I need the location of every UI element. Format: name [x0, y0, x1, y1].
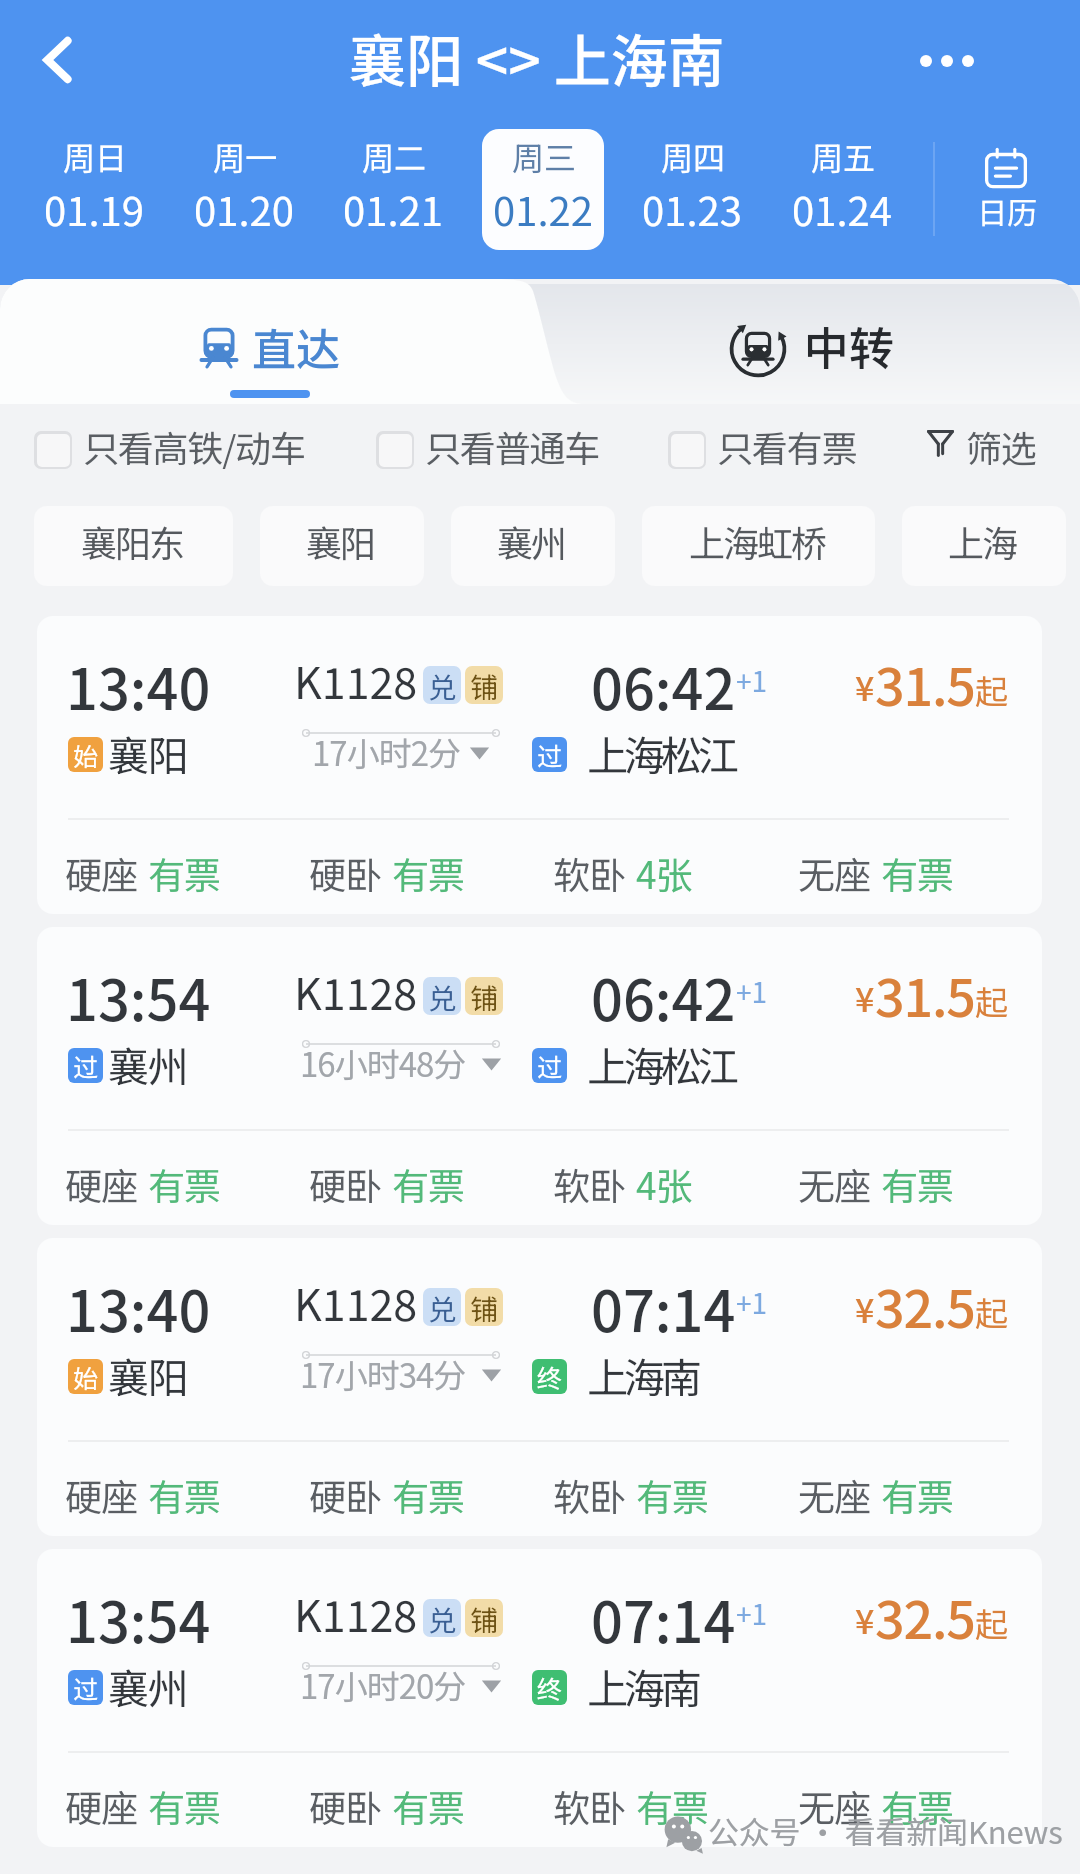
staticText: ¥	[855, 973, 875, 1022]
staticText: 起	[975, 1288, 1008, 1336]
staticText: 公众号 · 看看新闻Knews	[708, 1808, 1063, 1853]
staticText: 过	[73, 1048, 99, 1083]
staticText: 过	[537, 1048, 563, 1083]
staticText: 31.5	[875, 646, 975, 721]
staticText: 有票	[881, 1468, 953, 1522]
staticText: 襄州	[108, 1034, 187, 1093]
staticText: 只看有票	[717, 420, 857, 472]
staticText: 起	[975, 1599, 1008, 1647]
staticText: 06:42	[591, 645, 736, 726]
staticText: 兑	[428, 1288, 457, 1326]
staticText: ¥	[855, 1284, 875, 1333]
staticText: 01.20	[194, 180, 294, 238]
staticText: K1128	[294, 1271, 418, 1333]
staticText: 上海南	[587, 1656, 698, 1715]
staticText: K1128	[294, 1582, 418, 1644]
staticText: 中转	[804, 313, 895, 378]
button[interactable]	[631, 129, 753, 250]
staticText: 有票	[392, 846, 464, 900]
button[interactable]	[781, 129, 903, 250]
staticText: 上海松江	[587, 723, 735, 782]
staticText: ¥	[855, 1595, 875, 1644]
staticText: 16小时48分	[300, 1039, 466, 1087]
button[interactable]: More options	[906, 19, 990, 103]
staticText: 有票	[392, 1468, 464, 1522]
button[interactable]: 13:54	[37, 927, 1042, 1225]
staticText: ¥	[855, 662, 875, 711]
staticText: 直达	[252, 315, 340, 379]
button[interactable]	[260, 506, 424, 586]
staticText: 铺	[470, 666, 499, 704]
staticText: 有票	[392, 1157, 464, 1211]
button[interactable]: 13:54	[37, 1549, 1042, 1847]
staticText: 周日	[63, 133, 128, 179]
staticText: 起	[975, 666, 1008, 714]
staticText: 周三	[512, 133, 577, 179]
staticText: 兑	[428, 1599, 457, 1637]
staticText: 31.5	[875, 957, 975, 1032]
staticText: 周一	[213, 133, 278, 179]
button[interactable]	[33, 129, 155, 250]
staticText: 硬卧	[309, 1157, 381, 1211]
staticText: 软卧	[553, 846, 625, 900]
button[interactable]	[183, 129, 305, 250]
button[interactable]	[28, 420, 351, 478]
button[interactable]	[482, 129, 604, 250]
staticText: 01.21	[343, 180, 443, 238]
staticText: 01.22	[493, 180, 593, 238]
button[interactable]: Back	[18, 20, 98, 100]
staticText: 无座	[798, 846, 870, 900]
staticText: 兑	[428, 977, 457, 1015]
staticText: +1	[736, 660, 768, 701]
staticText: 13:40	[66, 1267, 211, 1348]
button[interactable]	[451, 506, 615, 586]
staticText: 周五	[811, 133, 876, 179]
staticText: 襄州	[108, 1656, 187, 1715]
button[interactable]	[0, 279, 540, 404]
button[interactable]	[642, 506, 875, 586]
staticText: 01.19	[44, 180, 144, 238]
button[interactable]	[902, 506, 1066, 586]
staticText: 始	[73, 1359, 99, 1394]
staticText: 襄阳 <> 上海南	[349, 16, 725, 99]
staticText: 有票	[392, 1779, 464, 1833]
staticText: 只看高铁/动车	[83, 420, 305, 472]
staticText: 17小时2分	[312, 728, 460, 776]
staticText: 17小时34分	[300, 1350, 466, 1398]
staticText: 有票	[881, 846, 953, 900]
button[interactable]	[370, 420, 621, 478]
staticText: 硬卧	[309, 1779, 381, 1833]
button[interactable]: Calendar	[944, 129, 1068, 250]
staticText: 有票	[148, 846, 220, 900]
staticText: 上海南	[587, 1345, 698, 1404]
staticText: 兑	[428, 666, 457, 704]
staticText: 07:14	[591, 1578, 736, 1659]
staticText: 过	[537, 737, 563, 772]
staticText: 硬座	[65, 846, 137, 900]
staticText: 01.23	[642, 180, 742, 238]
button[interactable]	[34, 506, 233, 586]
staticText: 日历	[977, 189, 1037, 232]
staticText: 有票	[148, 1157, 220, 1211]
staticText: 硬卧	[309, 1468, 381, 1522]
staticText: 襄阳	[306, 515, 375, 567]
button[interactable]	[332, 129, 454, 250]
staticText: 铺	[470, 1288, 499, 1326]
staticText: 01.24	[792, 180, 892, 238]
button[interactable]	[920, 420, 1045, 478]
staticText: 襄阳	[108, 1345, 187, 1404]
staticText: 只看普通车	[425, 420, 600, 472]
button[interactable]: 13:40	[37, 1238, 1042, 1536]
staticText: 硬座	[65, 1468, 137, 1522]
staticText: 有票	[148, 1468, 220, 1522]
staticText: 襄阳东	[81, 515, 184, 567]
staticText: 有票	[636, 1468, 708, 1522]
staticText: 起	[975, 977, 1008, 1025]
button[interactable]	[560, 279, 1080, 404]
staticText: 有票	[881, 1157, 953, 1211]
button[interactable]: 13:40	[37, 616, 1042, 914]
staticText: 终	[537, 1670, 563, 1705]
button[interactable]	[662, 420, 877, 478]
staticText: 硬座	[65, 1779, 137, 1833]
staticText: 4张	[636, 846, 692, 900]
